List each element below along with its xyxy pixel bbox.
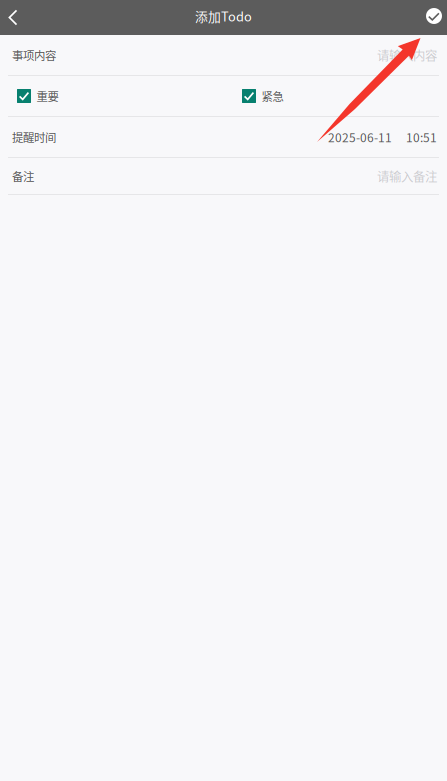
staticText: 请输入内容 [377,46,437,64]
button[interactable]: 重要 [17,88,58,104]
button[interactable]: 2025-06-11 [328,128,437,146]
staticText: 提醒时间 [12,129,56,145]
staticText: 添加Todo [195,7,252,25]
staticText: 事项内容 [12,47,56,63]
staticText: 紧急 [261,88,283,104]
staticText: 请输入备注 [377,167,437,185]
button[interactable]: Back [0,0,33,35]
staticText: 10:51 [406,128,437,146]
button[interactable]: 紧急 [242,88,283,104]
staticText: 备注 [12,168,34,184]
button[interactable]: Save [410,0,447,35]
staticText: 重要 [36,88,58,104]
staticText: 2025-06-11 [328,128,392,146]
